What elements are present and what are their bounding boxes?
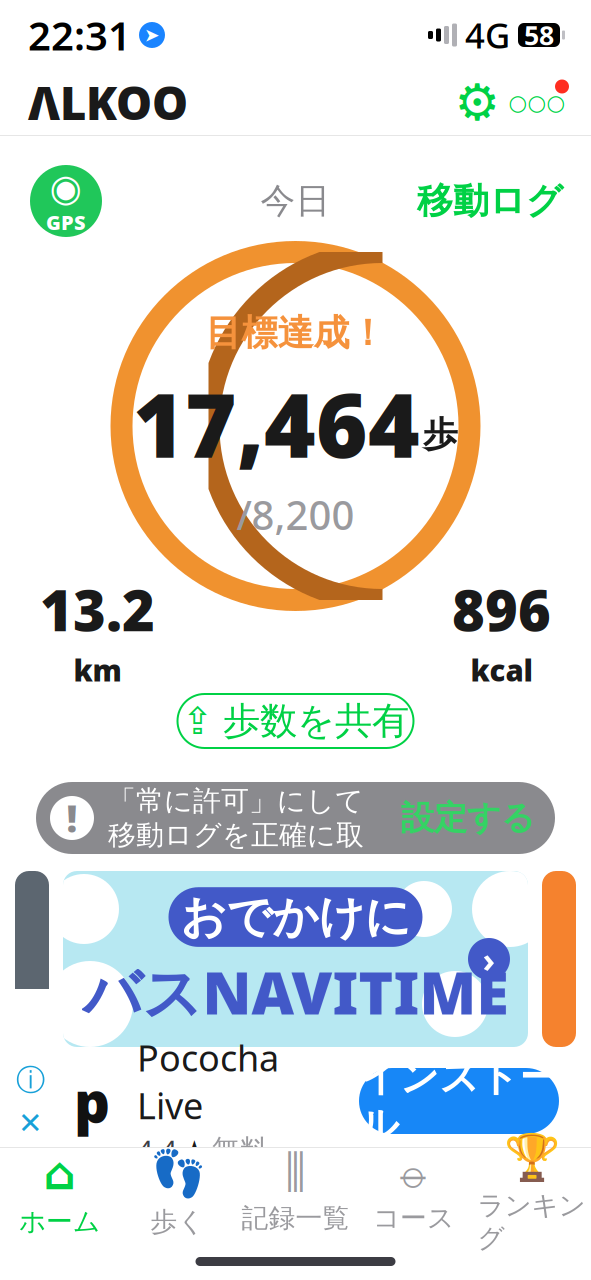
button[interactable]: Ad information — [16, 1062, 45, 1098]
staticText: 無料 — [212, 1133, 268, 1167]
button[interactable]: インストール — [359, 1068, 559, 1134]
button[interactable]: 🏆 — [472, 1148, 590, 1238]
staticText: ➤ — [144, 24, 160, 46]
button[interactable]: ⦵ — [354, 1148, 472, 1238]
button[interactable]: Settings — [449, 74, 505, 130]
staticText: 歩数を共有 — [223, 698, 409, 744]
staticText: 設定する — [401, 797, 535, 838]
staticText: 22:31 — [28, 8, 131, 61]
button[interactable]: ⇪ — [177, 694, 413, 748]
staticText: 移動ログ — [417, 179, 563, 223]
staticText: ✕ — [18, 1106, 43, 1140]
staticText: 4.4 — [137, 1131, 177, 1168]
staticText: コース — [373, 1202, 454, 1234]
staticText: 13.2 — [40, 572, 155, 647]
staticText: 目標達成！ — [205, 311, 385, 355]
staticText: ⓘ — [16, 1062, 45, 1098]
staticText: ⇪ — [182, 700, 213, 742]
button[interactable]: More options — [505, 74, 569, 130]
button[interactable]: Close ad — [18, 1106, 43, 1140]
staticText: インストール — [359, 1053, 558, 1148]
staticText: 58 — [524, 17, 554, 53]
staticText: 896 — [452, 572, 551, 647]
staticText: 歩く — [150, 1205, 204, 1238]
staticText: ◉ — [49, 166, 82, 209]
staticText: ⌂ — [43, 1148, 75, 1199]
staticText: ⦵ — [394, 1151, 432, 1196]
staticText: › — [482, 936, 495, 982]
button[interactable]: ! — [36, 782, 555, 854]
staticText: おでかけに — [180, 889, 410, 945]
button[interactable]: Next banner — [542, 871, 576, 1047]
staticText: /8,200 — [236, 488, 354, 541]
staticText: kcal — [470, 651, 532, 690]
staticText: 17,464 — [133, 365, 420, 482]
staticText: 👣 — [149, 1148, 205, 1199]
button[interactable]: Previous banner — [15, 871, 49, 1047]
staticText: p — [74, 1064, 110, 1138]
button[interactable]: バスNAVITIME banner — [63, 871, 528, 1047]
staticText: GPS — [46, 209, 86, 235]
button[interactable]: GPS — [30, 165, 102, 237]
staticText: ⚙ — [454, 74, 499, 131]
staticText: ホーム — [19, 1205, 100, 1238]
staticText: ⫼ — [285, 1151, 306, 1196]
button[interactable]: 👣 — [118, 1148, 236, 1238]
staticText: Pococha Live — [137, 1034, 279, 1129]
staticText: 位置情報の設定を「常に許可」にして移動ログを正確に取得しましょう — [108, 749, 364, 887]
staticText: 今日 — [260, 180, 330, 222]
button[interactable]: ⫼ — [236, 1148, 354, 1238]
button[interactable]: ⌂ — [0, 1148, 118, 1238]
staticText: ! — [66, 793, 77, 843]
staticText: ΛLKOO — [28, 72, 188, 133]
staticText: 記録一覧 — [241, 1202, 349, 1234]
staticText: ○○○ — [508, 90, 565, 115]
staticText: km — [73, 651, 121, 690]
staticText: 歩 — [423, 413, 458, 456]
staticText: ★ — [183, 1135, 206, 1164]
staticText: ランキング — [477, 1189, 585, 1255]
staticText: 4G — [465, 12, 510, 58]
button[interactable]: 移動ログ — [417, 179, 563, 223]
staticText: バスNAVITIME — [82, 953, 508, 1031]
staticText: 🏆 — [503, 1131, 559, 1183]
